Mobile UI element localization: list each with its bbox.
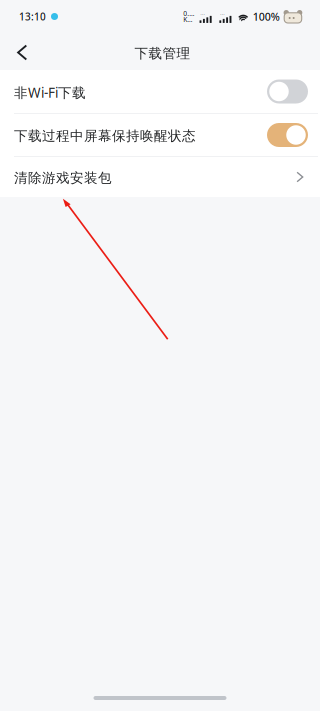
staticText: 非Wi-Fi下载 (14, 83, 86, 102)
button[interactable]: 返回 (0, 32, 48, 71)
staticText: 4G (220, 8, 225, 16)
staticText: 4G (200, 8, 205, 16)
staticText: 0.00 (183, 9, 194, 18)
staticText: KB/s (183, 15, 194, 24)
button[interactable]: 非Wi-Fi下载 (0, 70, 320, 113)
staticText: 100% (253, 9, 280, 24)
staticText: 下载管理 (134, 45, 190, 62)
staticText: 清除游戏安装包 (14, 169, 112, 186)
staticText: 13:10 (19, 10, 46, 23)
button[interactable]: 下载过程中屏幕保持唤醒状态 (0, 114, 320, 156)
button[interactable]: 清除游戏安装包 (0, 157, 320, 197)
staticText: 下载过程中屏幕保持唤醒状态 (14, 127, 196, 144)
